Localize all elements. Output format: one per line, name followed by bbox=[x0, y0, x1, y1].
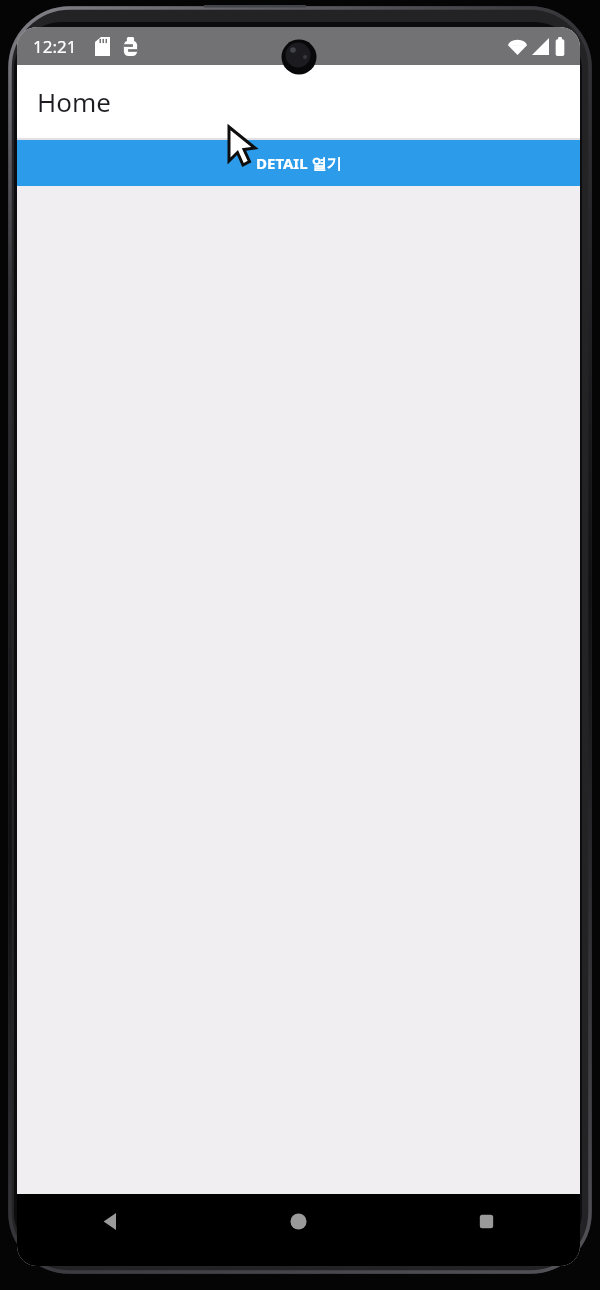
button[interactable]: Back bbox=[17, 1194, 204, 1266]
button[interactable]: DETAIL 열기 bbox=[17, 140, 580, 186]
button[interactable]: Recent apps bbox=[392, 1194, 580, 1266]
staticText: Home bbox=[37, 84, 111, 119]
staticText: DETAIL 열기 bbox=[256, 153, 342, 173]
staticText: 12:21 bbox=[33, 35, 77, 58]
button[interactable]: Home bbox=[204, 1194, 392, 1266]
